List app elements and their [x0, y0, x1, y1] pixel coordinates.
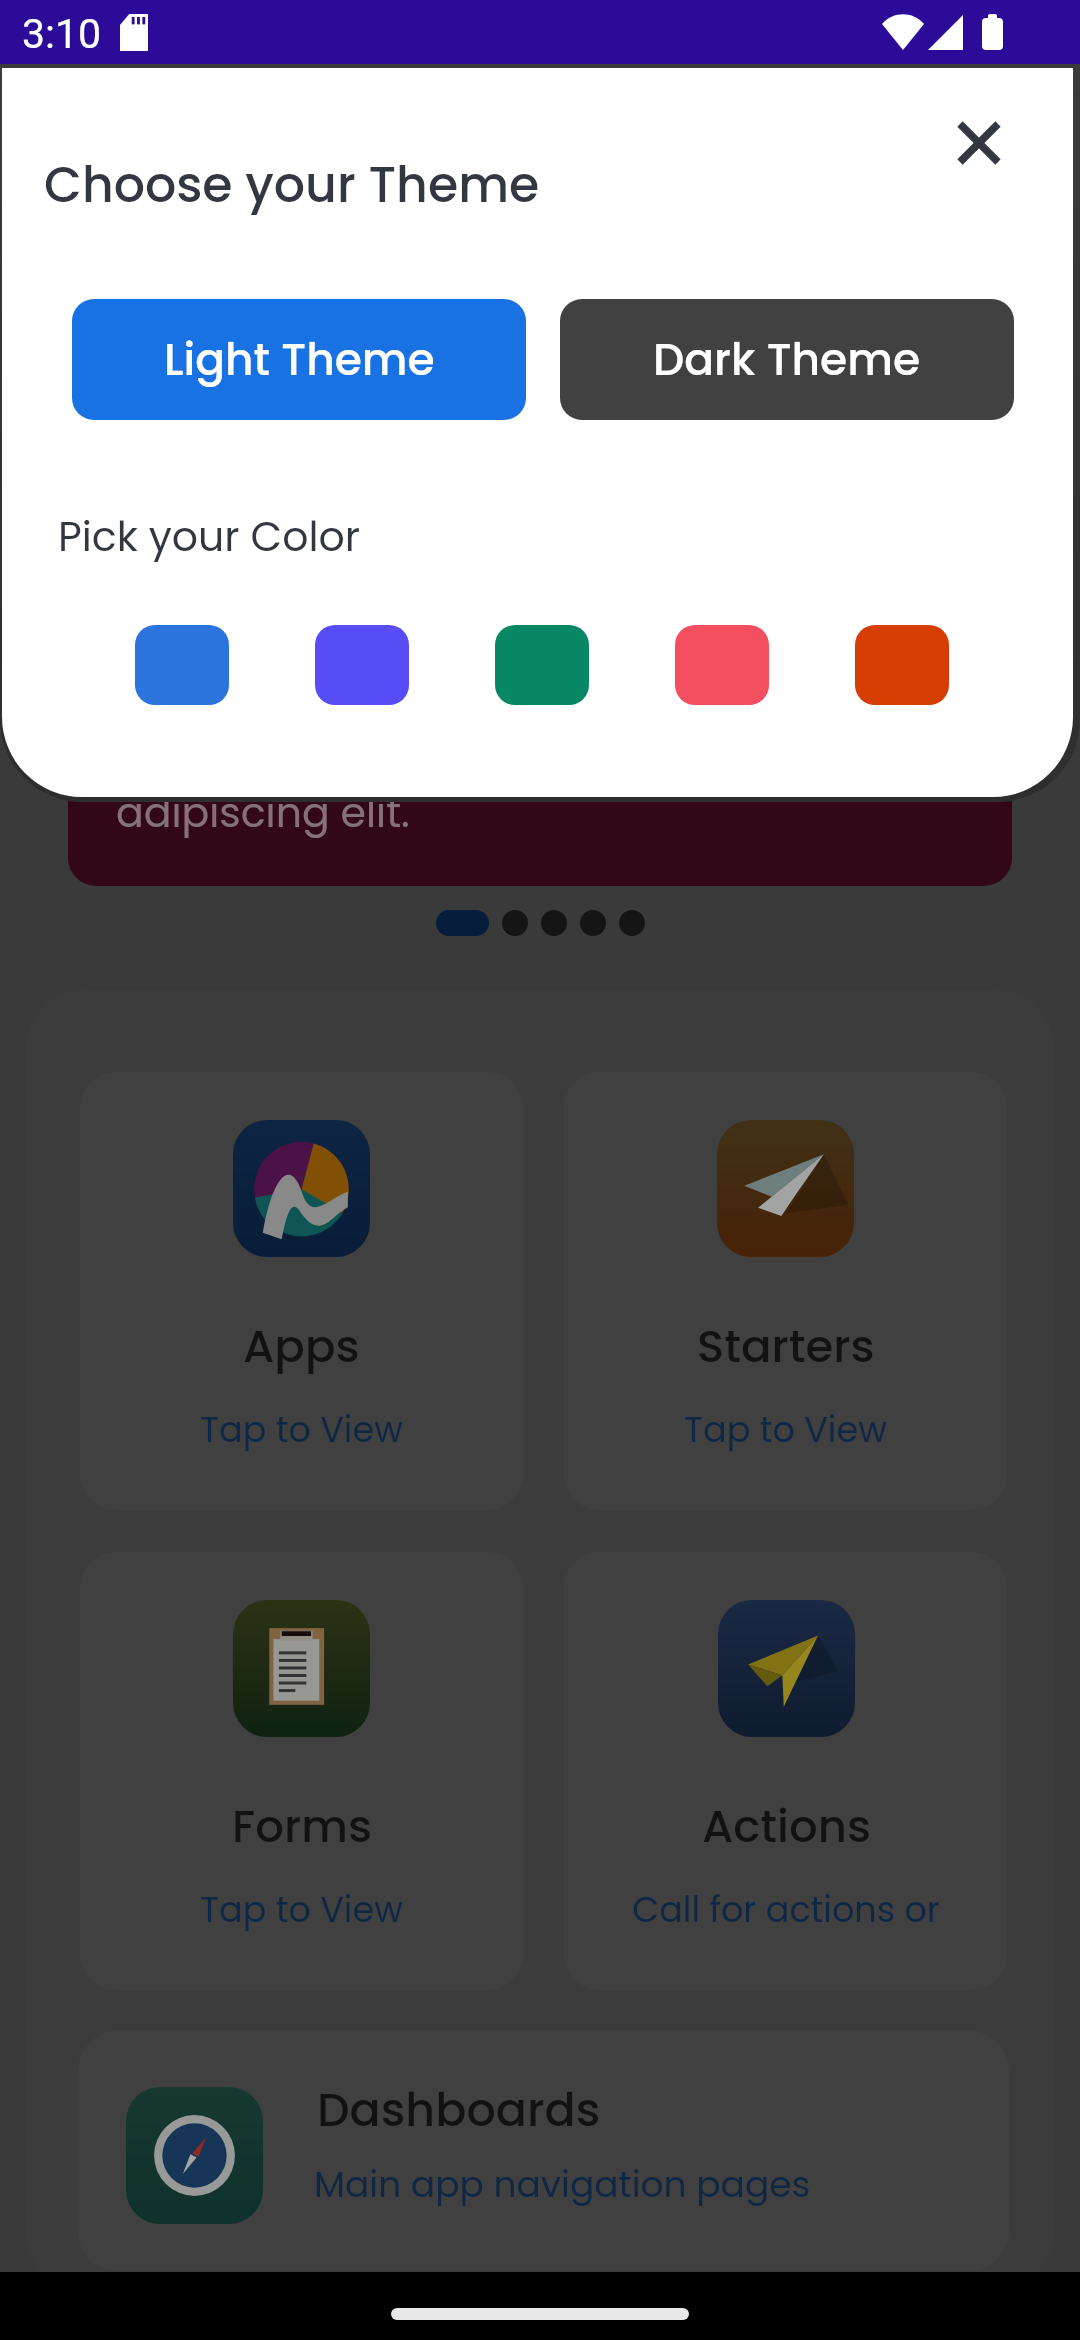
staticText: 3:10: [22, 10, 102, 58]
button[interactable]: Close: [927, 91, 1031, 195]
staticText: Pick your Color: [58, 508, 361, 565]
button[interactable]: Light Theme: [72, 299, 526, 420]
staticText: Actions: [702, 1795, 871, 1858]
button[interactable]: Apps: [80, 1072, 523, 1510]
staticText: Tap to View: [200, 1405, 403, 1454]
button[interactable]: Forms: [80, 1552, 523, 1990]
button[interactable]: Color swatch: [315, 625, 409, 705]
staticText: Tap to View: [200, 1885, 403, 1934]
button[interactable]: Dashboards: [78, 2031, 1009, 2271]
staticText: Choose your Theme: [44, 151, 540, 220]
staticText: Dashboards: [317, 2078, 601, 2142]
staticText: Light Theme: [164, 329, 435, 391]
staticText: adipiscing elit.: [116, 784, 410, 841]
staticText: Dark Theme: [653, 329, 921, 391]
button[interactable]: Color swatch: [135, 625, 229, 705]
button[interactable]: Color swatch: [675, 625, 769, 705]
button[interactable]: Actions: [564, 1552, 1007, 1990]
staticText: Tap to View: [684, 1405, 887, 1454]
staticText: Starters: [697, 1315, 875, 1378]
staticText: Forms: [232, 1795, 372, 1858]
button[interactable]: Color swatch: [495, 625, 589, 705]
staticText: Call for actions or: [632, 1885, 940, 1934]
button[interactable]: Color swatch: [855, 625, 949, 705]
button[interactable]: Starters: [564, 1072, 1007, 1510]
button[interactable]: Dark Theme: [560, 299, 1014, 420]
staticText: Apps: [243, 1315, 360, 1378]
staticText: Main app navigation pages: [314, 2159, 811, 2209]
